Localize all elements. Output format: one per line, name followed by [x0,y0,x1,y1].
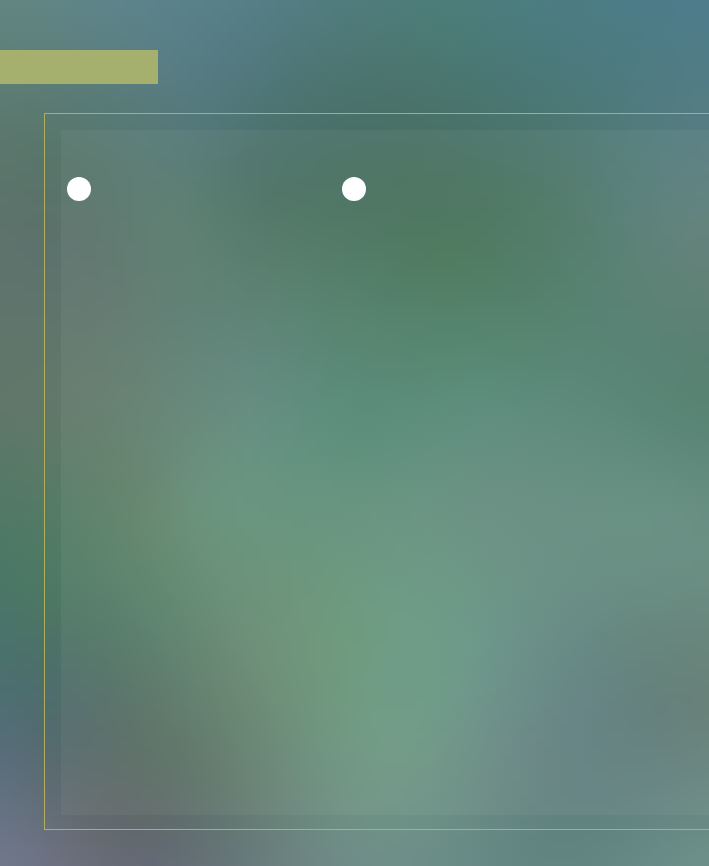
button[interactable]: Content panel [61,130,709,815]
button[interactable]: Primary marker [67,177,91,201]
button[interactable]: Secondary marker [342,177,366,201]
button[interactable]: Outlined surface [44,113,709,830]
